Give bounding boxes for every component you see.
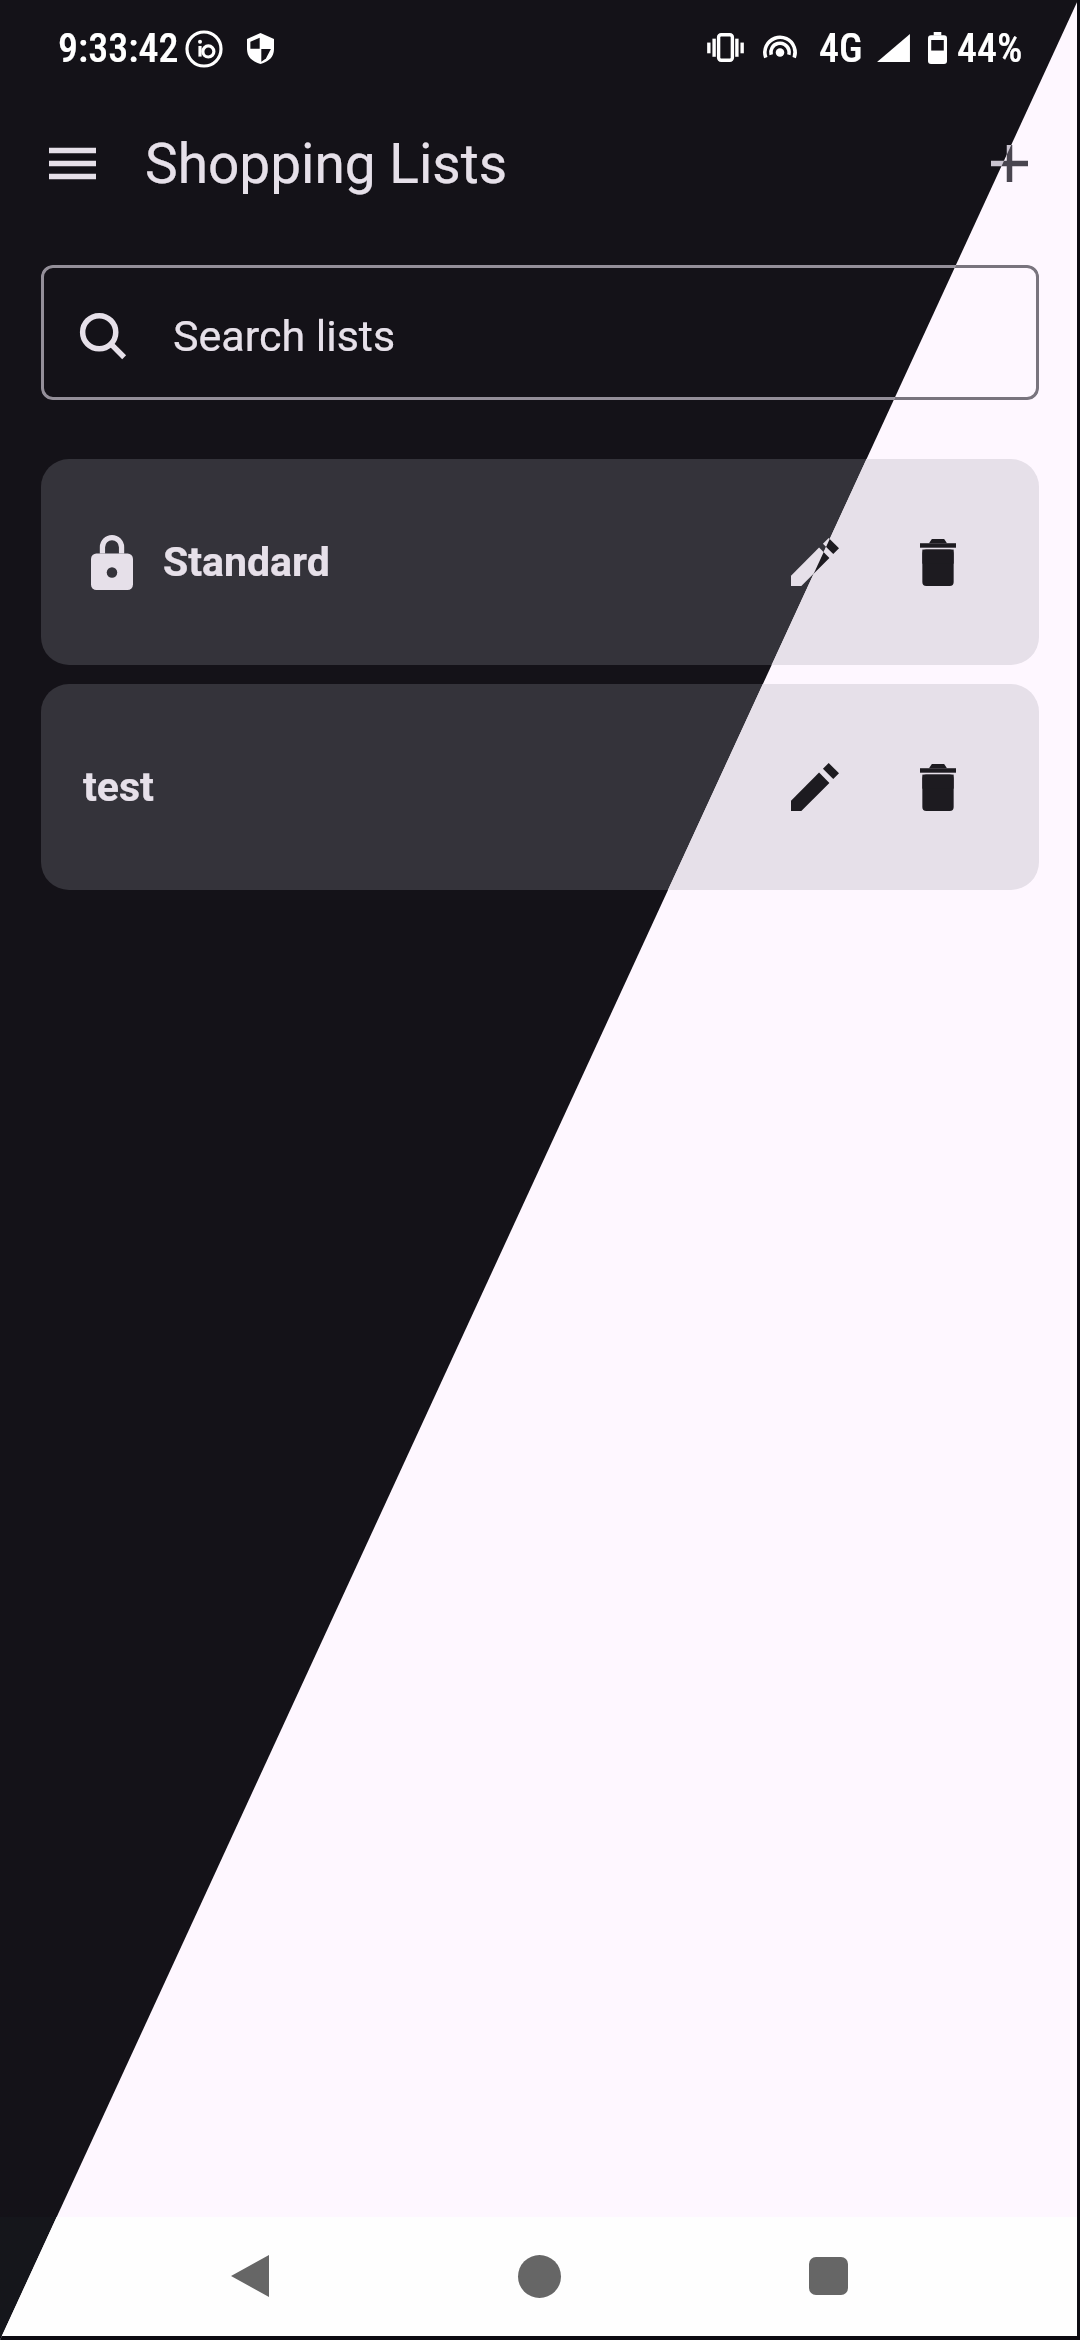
staticText: 9:33:42: [58, 25, 179, 72]
staticText: Search lists: [173, 311, 396, 361]
button[interactable]: Edit: [765, 737, 865, 837]
button[interactable]: Recents: [783, 2231, 873, 2321]
button[interactable]: Menu: [27, 118, 117, 208]
staticText: Shopping Lists: [145, 132, 508, 196]
button[interactable]: Home: [494, 2231, 584, 2321]
staticText: 4G: [819, 25, 863, 72]
staticText: 9:33:42: [58, 25, 179, 72]
button[interactable]: Edit: [765, 512, 865, 612]
button[interactable]: Back: [205, 2231, 295, 2321]
button[interactable]: Edit: [765, 512, 865, 612]
staticText: Standard: [163, 538, 330, 586]
button[interactable]: Menu: [27, 118, 117, 208]
button[interactable]: Add list: [964, 118, 1054, 208]
button[interactable]: test: [41, 684, 1039, 890]
button[interactable]: Delete: [888, 512, 988, 612]
staticText: Shopping Lists: [145, 132, 508, 196]
button[interactable]: Back: [205, 2231, 295, 2321]
staticText: Search lists: [173, 311, 396, 361]
staticText: 44%: [957, 25, 1023, 72]
staticText: 44%: [957, 25, 1023, 72]
staticText: test: [83, 763, 154, 811]
staticText: test: [83, 763, 154, 811]
button[interactable]: Home: [494, 2231, 584, 2321]
button[interactable]: Search lists: [41, 265, 1039, 400]
staticText: Standard: [163, 538, 330, 586]
button[interactable]: Add list: [964, 118, 1054, 208]
button[interactable]: Search lists: [41, 265, 1039, 400]
button[interactable]: Delete: [888, 737, 988, 837]
staticText: 4G: [819, 25, 863, 72]
button[interactable]: Standard: [41, 459, 1039, 665]
button[interactable]: Recents: [783, 2231, 873, 2321]
button[interactable]: Delete: [888, 512, 988, 612]
button[interactable]: Delete: [888, 737, 988, 837]
button[interactable]: Standard: [41, 459, 1039, 665]
button[interactable]: Edit: [765, 737, 865, 837]
button[interactable]: test: [41, 684, 1039, 890]
